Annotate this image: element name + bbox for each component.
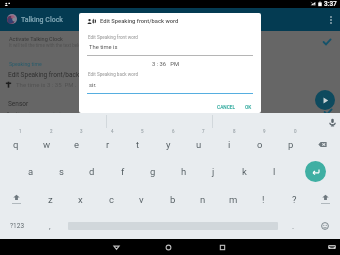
staticText: ?123 (10, 222, 25, 230)
staticText: k (242, 166, 247, 177)
button[interactable]: n (187, 186, 218, 213)
button[interactable]: r (92, 131, 123, 158)
button[interactable]: z (35, 186, 66, 213)
staticText: Air swipe on proximity sensor, palm of t… (15, 111, 223, 117)
staticText: Talking Clock (21, 16, 63, 24)
button[interactable]: w (31, 131, 62, 158)
button[interactable]: ?123 (0, 213, 34, 239)
button[interactable]: j (198, 158, 229, 185)
staticText: b (170, 194, 176, 205)
staticText: 2 (50, 129, 53, 134)
staticText: Edit Speaking front/back word (100, 18, 179, 25)
button[interactable]: a (15, 158, 46, 185)
button[interactable]: t (122, 131, 153, 158)
staticText: s (59, 166, 64, 177)
button[interactable]: p (275, 131, 306, 158)
staticText: 3 (80, 129, 83, 134)
staticText: 1 (19, 129, 22, 134)
staticText: v (139, 194, 144, 205)
button[interactable]: v (126, 186, 157, 213)
staticText: f (121, 166, 125, 177)
button[interactable]: l (259, 158, 290, 185)
staticText: o (257, 139, 263, 150)
button[interactable]: i (214, 131, 245, 158)
staticText: Edit Speaking back word (88, 72, 138, 77)
button[interactable]: x (65, 186, 96, 213)
staticText: Activate Talking Clock (9, 36, 63, 42)
button[interactable]: Play (315, 90, 335, 110)
button[interactable]: s (46, 158, 77, 185)
staticText: CANCEL (217, 105, 236, 111)
button[interactable]: Home (159, 239, 177, 255)
staticText: a (28, 166, 34, 177)
staticText: 4 (111, 129, 114, 134)
button[interactable]: Voice input (324, 114, 340, 130)
staticText: q (13, 139, 19, 150)
staticText: 3 : 36 PM (152, 61, 180, 68)
button[interactable]: OK (242, 103, 255, 113)
button[interactable]: h (168, 158, 199, 185)
button[interactable]: g (137, 158, 168, 185)
button[interactable]: , (37, 213, 63, 239)
button[interactable]: Back (107, 239, 125, 255)
staticText: . (292, 222, 295, 231)
staticText: 5 (141, 129, 144, 134)
staticText: j (212, 166, 215, 177)
staticText: 3:37 (324, 0, 337, 8)
staticText: h (181, 166, 187, 177)
staticText: , (49, 222, 51, 231)
staticText: c (109, 194, 114, 205)
staticText: e (74, 139, 80, 150)
button[interactable]: Shift (310, 186, 340, 212)
button[interactable]: q (0, 131, 31, 158)
button[interactable]: d (76, 158, 107, 185)
button[interactable]: c (96, 186, 127, 213)
staticText: l (273, 166, 276, 177)
button[interactable]: More options (323, 12, 339, 28)
button[interactable]: k (229, 158, 260, 185)
staticText: x (78, 194, 83, 205)
staticText: w (43, 139, 51, 150)
staticText: m (229, 194, 238, 205)
staticText: p (288, 139, 294, 150)
button[interactable]: f (107, 158, 138, 185)
button[interactable]: m (218, 186, 249, 213)
button[interactable]: Hide keyboard (323, 239, 340, 255)
staticText: d (89, 166, 95, 177)
staticText: 0 (294, 129, 297, 134)
staticText: 9 (263, 129, 266, 134)
staticText: ? (292, 194, 297, 205)
staticText: sir. (89, 82, 97, 89)
button[interactable]: CANCEL (214, 103, 239, 113)
staticText: Edit Speaking front/back word (8, 71, 96, 79)
staticText: t (136, 139, 140, 150)
staticText: z (48, 194, 53, 205)
button[interactable]: Recent apps (213, 239, 231, 255)
button[interactable]: Emoji (312, 213, 338, 239)
button[interactable]: e (61, 131, 92, 158)
staticText: y (166, 139, 171, 150)
button[interactable]: Shift (1, 186, 31, 212)
button[interactable]: o (244, 131, 275, 158)
staticText: The time is (89, 44, 118, 51)
staticText: u (196, 139, 202, 150)
staticText: It will tell the time with the text belo… (9, 43, 85, 48)
staticText: g (150, 166, 156, 177)
button[interactable]: y (153, 131, 184, 158)
button[interactable]: ? (279, 186, 310, 213)
staticText: 8 (233, 129, 236, 134)
staticText: OK (245, 105, 252, 111)
staticText: Sensor (8, 100, 29, 108)
button[interactable]: ! (248, 186, 279, 213)
staticText: Speaking time (9, 61, 42, 67)
staticText: Edit Speaking front word (88, 35, 138, 40)
staticText: The time is 3 : 35 PM . (16, 81, 77, 88)
staticText: r (106, 139, 110, 150)
staticText: i (228, 139, 231, 150)
button[interactable]: Backspace (305, 131, 340, 158)
button[interactable]: b (157, 186, 188, 213)
button[interactable]: u (183, 131, 214, 158)
button[interactable]: Enter (305, 161, 326, 182)
